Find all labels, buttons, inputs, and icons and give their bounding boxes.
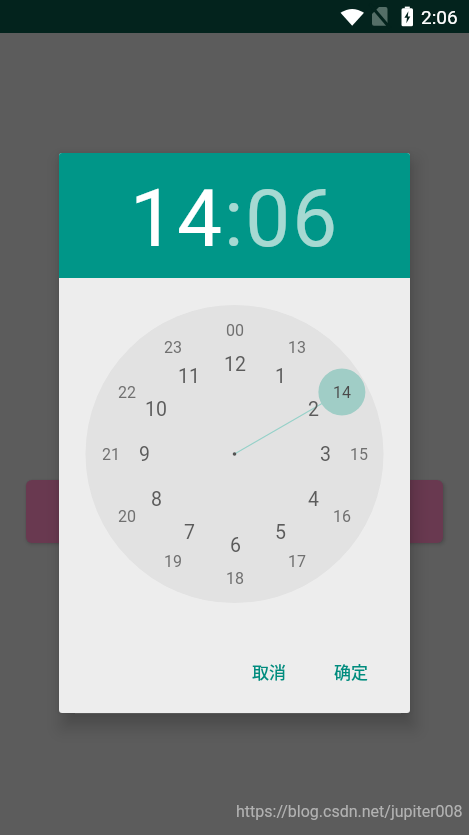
- staticText: 7: [184, 521, 195, 544]
- staticText: 5: [275, 521, 286, 544]
- staticText: 11: [178, 365, 200, 388]
- staticText: 00: [226, 321, 244, 340]
- staticText: 4: [308, 488, 319, 511]
- staticText: 23: [164, 338, 182, 357]
- staticText: 6: [230, 534, 241, 557]
- staticText: 22: [118, 383, 136, 402]
- staticText: 19: [164, 552, 182, 571]
- staticText: 20: [118, 507, 136, 526]
- staticText: 2:06: [421, 6, 458, 28]
- staticText: 2: [308, 398, 319, 421]
- staticText: 10: [145, 398, 167, 421]
- staticText: 1: [275, 365, 286, 388]
- staticText: 13: [288, 338, 306, 357]
- staticText: 9: [139, 443, 150, 466]
- staticText: https://blog.csdn.net/jupiter008: [236, 802, 463, 821]
- staticText: 12: [224, 353, 246, 376]
- staticText: 21: [102, 445, 120, 464]
- staticText: 15: [350, 445, 368, 464]
- staticText: 16: [333, 507, 351, 526]
- button[interactable]: 确定: [315, 649, 387, 693]
- staticText: 17: [288, 552, 306, 571]
- staticText: 14:06: [130, 172, 340, 266]
- staticText: 3: [320, 443, 331, 466]
- staticText: 14: [333, 383, 351, 402]
- button[interactable]: 取消: [233, 649, 305, 693]
- button[interactable]: [26, 480, 443, 543]
- staticText: 确定: [334, 659, 368, 684]
- staticText: 18: [226, 569, 244, 588]
- staticText: 取消: [252, 659, 286, 684]
- staticText: 8: [151, 488, 162, 511]
